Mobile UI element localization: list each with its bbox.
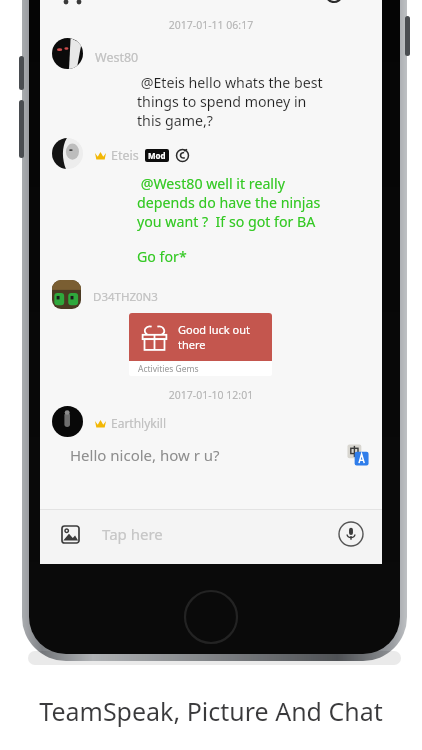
staticText: West80 <box>95 49 139 66</box>
staticText: Activities Gems <box>138 363 199 375</box>
staticText: D34THZ0N3 <box>93 289 158 305</box>
button[interactable]: Tap here <box>84 510 336 557</box>
button[interactable]: Earthlykill avatar <box>52 406 83 437</box>
staticText: Mod <box>148 150 166 161</box>
staticText: Good luck out there <box>178 322 272 352</box>
staticText: Hello nicole, how r u? <box>70 445 346 465</box>
staticText: 2017-01-10 12:01 <box>40 388 382 402</box>
button[interactable]: Eteis avatar <box>52 138 83 169</box>
staticText: 2017-01-11 06:17 <box>40 18 382 32</box>
staticText: @West80 well it really depends do have t… <box>137 174 336 231</box>
staticText: Tap here <box>102 524 163 544</box>
staticText: @Eteis hello whats the best things to sp… <box>137 73 326 130</box>
button[interactable]: Voice message <box>336 519 366 549</box>
button[interactable]: Attach image <box>56 520 84 548</box>
staticText: Eteis <box>111 147 139 164</box>
button[interactable]: D34THZ0N3 avatar <box>52 280 81 309</box>
staticText: TeamSpeak, Picture And Chat <box>0 694 422 728</box>
button[interactable]: West80 avatar <box>52 38 83 69</box>
staticText: Earthlykill <box>111 415 167 431</box>
staticText: Go for* <box>137 247 187 266</box>
button[interactable]: Translate <box>346 443 370 467</box>
button[interactable]: Good luck out there <box>129 313 272 376</box>
